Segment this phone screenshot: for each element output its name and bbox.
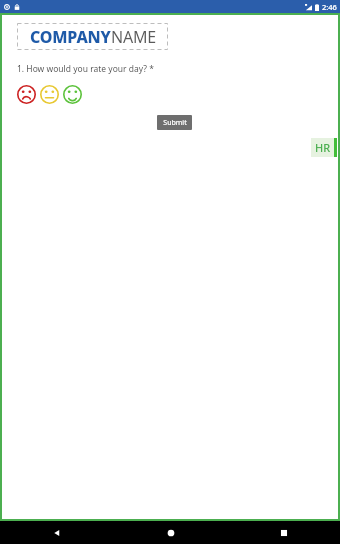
button[interactable]: Recent apps [227,521,340,544]
button[interactable]: Back [0,521,114,544]
button[interactable]: Rate bad [16,84,37,105]
button[interactable]: HR [311,138,337,157]
staticText: NAME [111,26,156,48]
button[interactable]: Rate neutral [39,84,60,105]
staticText: HR [315,140,331,155]
button[interactable]: Home [114,521,227,544]
button[interactable]: Rate good [62,84,83,105]
staticText: COMPANY [30,26,111,48]
staticText: 2:46 [322,2,337,12]
button[interactable]: Submit [157,115,192,130]
button[interactable]: COMPANY [17,23,168,50]
staticText: 1. How would you rate your day? * [17,63,154,75]
staticText: Submit [163,118,187,128]
